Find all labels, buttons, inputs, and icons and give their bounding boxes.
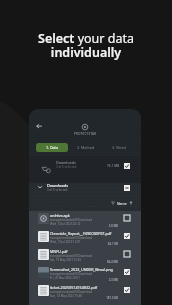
staticText: 84.1 KB [93, 242, 118, 246]
staticText: 3. Shred [112, 145, 126, 150]
staticText: 3 of 5 selected [56, 165, 77, 169]
button[interactable]: Select [124, 163, 130, 169]
button[interactable]: MNFU.pdf [29, 248, 141, 266]
staticText: storage/emulated/0/Download [50, 254, 92, 258]
staticText: Wed, 12 Jul 2023 22:12 [50, 222, 81, 226]
staticText: MNFU.pdf [50, 249, 68, 254]
staticText: storage/emulated/0/Download [50, 272, 92, 276]
staticText: 3 of 5 selected [47, 188, 68, 192]
staticText: Name [117, 201, 127, 206]
button[interactable]: Select [124, 269, 130, 275]
staticText: storage/emulated/0/Download [50, 290, 92, 294]
staticText: Wed, 13 Jul 2023 12:01 [50, 240, 81, 244]
staticText: Chronicle_Report__F49EC6DF07.pdf [50, 231, 112, 236]
button[interactable]: 2. Method [70, 143, 101, 152]
staticText: archive.apk [50, 213, 70, 218]
staticText: Screenshot_2023_UNDER_Bimal.png [50, 267, 113, 272]
button[interactable]: Select [124, 233, 130, 239]
staticText: Select your data individually [0, 30, 172, 60]
button[interactable]: 3. Shred [103, 143, 134, 152]
staticText: 181.5 KB [93, 296, 118, 300]
staticText: Fri, 25 Nov 2022 20:01 [50, 276, 80, 280]
staticText: ticket-20250514154832.pdf [50, 285, 97, 290]
button[interactable]: ticket-20250514154832.pdf [29, 284, 141, 302]
staticText: 76.1 MB [107, 164, 120, 168]
button[interactable]: Select [124, 215, 130, 221]
button[interactable]: archive.apk [29, 212, 141, 230]
button[interactable]: Select [124, 287, 130, 293]
staticText: Downloads [47, 183, 69, 188]
staticText: 1. Data [46, 145, 58, 150]
staticText: storage/emulated/0/Download [50, 236, 92, 240]
button[interactable]: Back [35, 122, 44, 131]
staticText: Sun, 14 May 2023 15:48 [50, 294, 82, 298]
staticText: 5.0 MB [93, 224, 118, 228]
button[interactable]: Name [29, 198, 133, 208]
staticText: 2.3 MB [93, 278, 118, 282]
button[interactable]: Select [124, 251, 130, 257]
staticText: 2. Method [77, 145, 95, 150]
staticText: Sat, 15 May 2021 21:45 [50, 258, 82, 262]
button[interactable]: Screenshot_2023_UNDER_Bimal.png [29, 266, 141, 284]
button[interactable]: 1. Data [36, 143, 68, 152]
button[interactable]: Select [124, 185, 130, 191]
staticText: Downloads [56, 160, 76, 165]
button[interactable]: Chronicle_Report__F49EC6DF07.pdf [29, 230, 141, 248]
staticText: PROTECTSTAR [74, 132, 97, 136]
staticText: 84.4 MB [93, 260, 118, 264]
staticText: storage/emulated/0/Download [50, 218, 92, 222]
